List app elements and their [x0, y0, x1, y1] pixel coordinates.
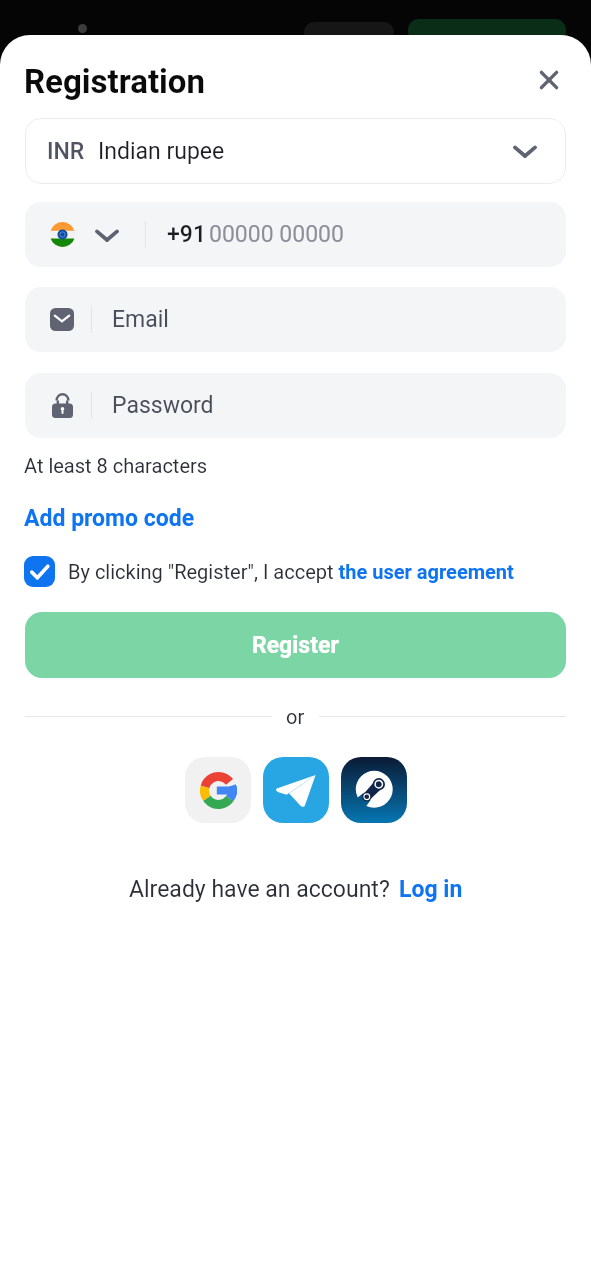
staticText: INR [47, 138, 85, 165]
button[interactable]: Password [25, 373, 566, 438]
button[interactable]: Sign in with Google [185, 757, 251, 823]
button[interactable]: Sign in with Steam [341, 757, 407, 823]
staticText: Register [252, 632, 339, 659]
button[interactable]: Register [25, 612, 566, 678]
staticText: Log in [399, 876, 463, 903]
button[interactable]: Accept the user agreement [24, 556, 55, 587]
staticText: Email [112, 306, 169, 333]
button[interactable]: Email [25, 287, 566, 352]
staticText: Indian rupee [98, 138, 225, 165]
staticText: +91 [167, 221, 206, 248]
staticText: Already have an account? [129, 876, 390, 903]
button[interactable]: Log in [399, 876, 463, 903]
staticText: Registration [24, 62, 205, 101]
button[interactable]: Close [532, 63, 566, 97]
staticText: At least 8 characters [24, 454, 208, 477]
staticText: Add promo code [24, 505, 195, 532]
button[interactable]: Sign in with Telegram [263, 757, 329, 823]
staticText: or [286, 705, 305, 728]
button[interactable]: Add promo code [24, 505, 195, 532]
button[interactable]: +91 [25, 202, 566, 267]
staticText: Password [112, 392, 214, 419]
staticText: By clicking "Register", I accept the use… [68, 560, 514, 583]
button[interactable]: INR [25, 118, 566, 184]
staticText: 00000 00000 [209, 221, 344, 248]
